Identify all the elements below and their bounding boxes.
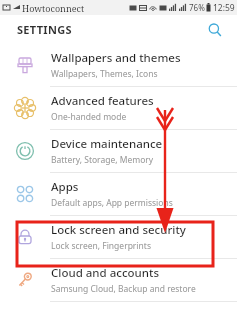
staticText: Device maintenance xyxy=(51,136,163,152)
button[interactable]: Cloud and accounts xyxy=(0,259,237,302)
staticText: SETTINGS xyxy=(17,22,72,37)
staticText: Wallpapers, Themes, Icons xyxy=(51,68,158,80)
staticText: One-handed mode xyxy=(51,111,127,123)
button[interactable]: Lock screen and security xyxy=(0,216,237,259)
staticText: 76% xyxy=(189,2,205,13)
staticText: Wallpapers and themes xyxy=(51,50,181,66)
staticText: Lock screen, Fingerprints xyxy=(51,240,151,252)
staticText: Samsung Cloud, Backup and restore xyxy=(51,283,196,295)
staticText: Advanced features xyxy=(51,93,154,109)
button[interactable]: Advanced features xyxy=(0,87,237,130)
staticText: Battery, Storage, Memory xyxy=(51,154,154,166)
staticText: Apps xyxy=(51,179,79,195)
staticText: Howtoconnect xyxy=(22,2,85,14)
staticText: Cloud and accounts xyxy=(51,265,159,281)
button[interactable]: Wallpapers and themes xyxy=(0,44,237,87)
staticText: Lock screen and security xyxy=(51,222,186,238)
staticText: 12:59 xyxy=(213,2,235,14)
button[interactable]: Device maintenance xyxy=(0,130,237,173)
button[interactable]: Search xyxy=(203,18,227,42)
staticText: Default apps, App permissions xyxy=(51,197,173,209)
button[interactable]: Apps xyxy=(0,173,237,216)
